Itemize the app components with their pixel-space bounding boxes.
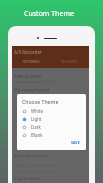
staticText: Recording screen <box>14 153 49 159</box>
staticText: RECORDS <box>61 59 78 64</box>
button[interactable]: Light <box>17 115 86 123</box>
staticText: Save location <box>14 73 42 79</box>
staticText: Stop location <box>14 176 40 182</box>
staticText: Light <box>31 116 42 122</box>
button[interactable]: White <box>17 107 86 115</box>
button[interactable]: Dark <box>17 123 86 131</box>
button[interactable]: Save location <box>12 73 89 85</box>
button[interactable]: Recording screen <box>12 152 89 161</box>
button[interactable]: SAVE <box>69 139 82 146</box>
button[interactable]: Stop location <box>12 175 89 183</box>
button[interactable]: RECORDS <box>50 57 89 66</box>
staticText: Custom Theme <box>24 9 74 19</box>
button[interactable]: Blank <box>17 131 86 139</box>
staticText: Save options <box>14 68 38 73</box>
staticText: White <box>31 108 43 114</box>
staticText: Dark <box>31 124 41 130</box>
staticText: SAVE <box>71 140 80 145</box>
staticText: File name format <box>14 87 50 93</box>
staticText: A/S Recorder <box>14 49 42 55</box>
button[interactable]: File name format <box>12 86 89 95</box>
staticText: Choose Theme <box>22 98 59 105</box>
staticText: Blank <box>31 132 43 138</box>
button[interactable]: SETTINGS <box>12 57 50 66</box>
staticText: SETTINGS <box>23 59 40 64</box>
